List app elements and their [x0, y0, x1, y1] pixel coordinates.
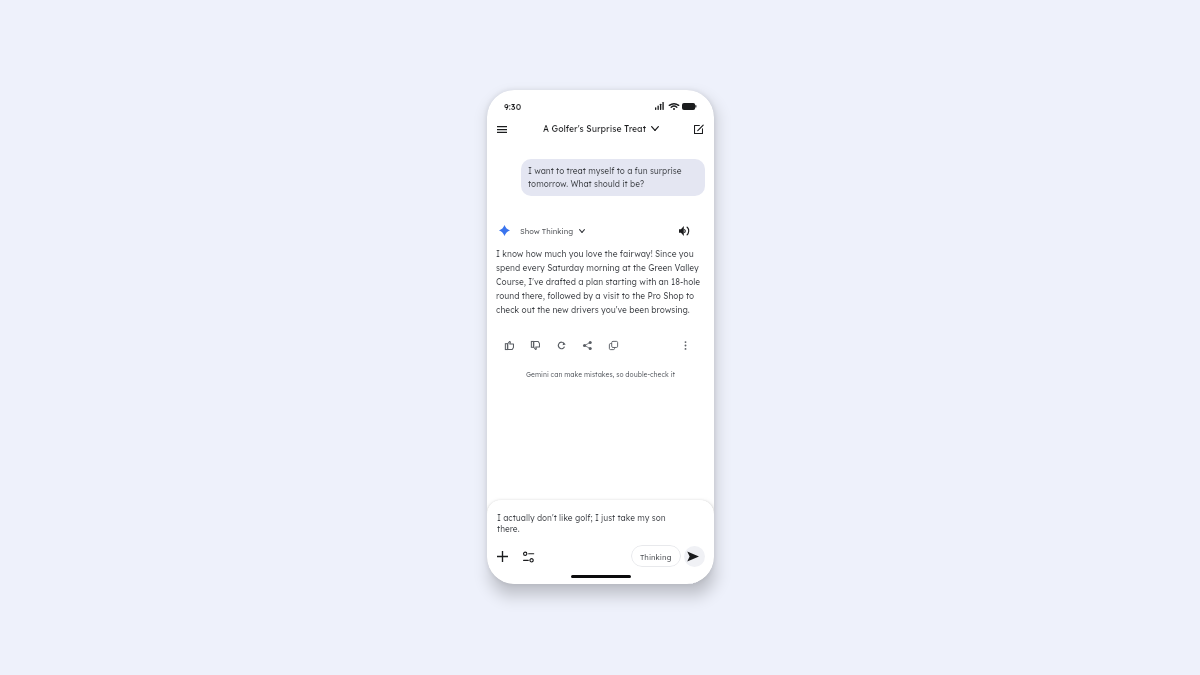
button[interactable]: Send — [684, 546, 705, 567]
staticText: Show Thinking — [520, 226, 574, 235]
button[interactable]: Dislike — [527, 337, 543, 353]
button[interactable]: New chat — [688, 119, 708, 139]
staticText: A Golfer's Surprise Treat — [543, 123, 646, 134]
button[interactable]: Thinking — [631, 545, 681, 567]
button[interactable]: Show Thinking — [519, 223, 586, 238]
button[interactable]: Share — [579, 337, 595, 353]
button[interactable]: I want to treat myself to a fun surprise… — [521, 159, 705, 196]
button[interactable]: Copy — [605, 337, 621, 353]
button[interactable]: A Golfer's Surprise Treat — [539, 120, 663, 137]
button[interactable]: Like — [501, 337, 517, 353]
staticText: I know how much you love the fairway! Si… — [496, 249, 701, 315]
staticText: 9:30 — [504, 102, 522, 112]
staticText: I want to treat myself to a fun surprise… — [528, 166, 682, 189]
button[interactable]: More options — [677, 337, 693, 353]
button[interactable]: Tools — [518, 546, 539, 567]
staticText: Gemini can make mistakes, so double-chec… — [487, 370, 714, 378]
button[interactable]: Add attachment — [492, 546, 513, 567]
staticText: Thinking — [640, 552, 672, 561]
button[interactable]: Open menu — [491, 118, 513, 140]
button[interactable]: Regenerate — [553, 337, 569, 353]
button[interactable]: Read aloud — [675, 222, 692, 239]
staticText: I actually don't like golf; I just take … — [497, 513, 666, 534]
